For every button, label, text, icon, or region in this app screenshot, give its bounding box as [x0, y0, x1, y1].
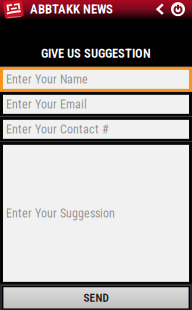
button[interactable]: Back: [152, 0, 168, 19]
staticText: Enter Your Name: [6, 72, 88, 86]
staticText: Enter Your Suggession: [6, 206, 115, 220]
button[interactable]: Enter Your Suggession: [0, 142, 192, 285]
staticText: Enter Your Email: [6, 97, 87, 111]
staticText: ABBTAKK NEWS: [30, 2, 113, 16]
staticText: SEND: [83, 291, 108, 304]
button[interactable]: Enter Your Contact #: [0, 117, 192, 142]
button[interactable]: Exit: [168, 0, 192, 19]
button[interactable]: Enter Your Email: [0, 92, 192, 117]
button[interactable]: SEND: [0, 285, 192, 310]
staticText: Enter Your Contact #: [6, 122, 109, 136]
button[interactable]: Enter Your Name: [0, 67, 192, 92]
staticText: GIVE US SUGGESTION: [41, 46, 151, 61]
